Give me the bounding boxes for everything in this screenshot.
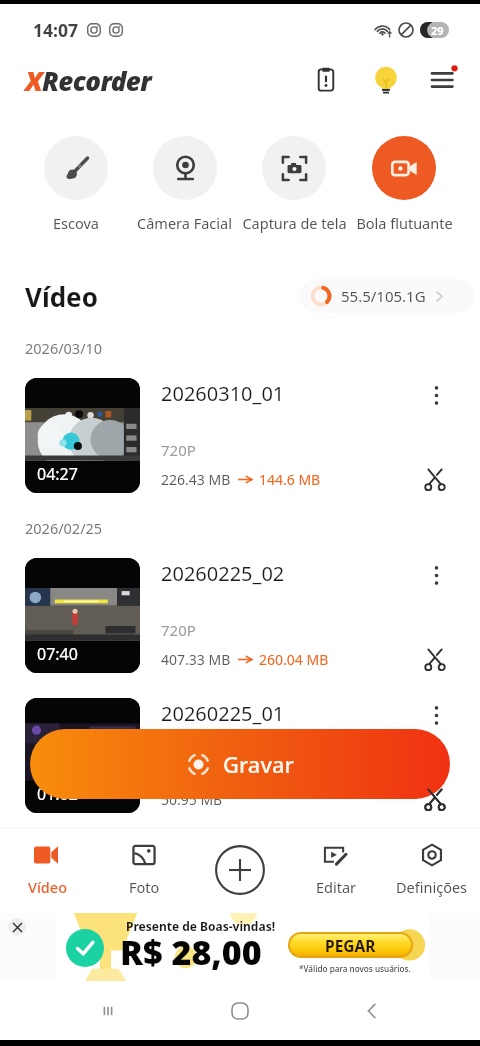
button[interactable]: Close ad	[8, 918, 26, 936]
button[interactable]: 07:40	[0, 558, 480, 673]
staticText: 20260225_02	[161, 560, 285, 587]
button[interactable]: Back	[348, 987, 396, 1035]
button[interactable]: Tips	[366, 60, 406, 100]
staticText: 2026/03/10	[25, 338, 103, 358]
staticText: Vídeo	[28, 877, 68, 897]
button[interactable]: Trim video	[413, 777, 457, 821]
button[interactable]: Vídeo	[0, 843, 96, 897]
button[interactable]: Definições	[384, 843, 480, 897]
staticText: R$ 28,00	[120, 929, 262, 975]
staticText: PEGAR	[325, 935, 376, 956]
staticText: 29	[431, 23, 444, 38]
staticText: 720P	[161, 620, 196, 640]
staticText: Definições	[396, 877, 468, 897]
staticText: Gravar	[223, 749, 294, 779]
button[interactable]: 55.5/105.1G	[299, 279, 474, 313]
button[interactable]: Câmera Facial	[130, 136, 239, 233]
button[interactable]: Menu	[424, 60, 464, 100]
button[interactable]: 04:27	[0, 378, 480, 493]
button[interactable]: Trim video	[413, 457, 457, 501]
staticText: Escova	[53, 213, 99, 233]
button[interactable]: 01:02	[0, 698, 480, 813]
button[interactable]: PEGAR	[288, 932, 413, 958]
staticText: *Válido para novos usuários.	[299, 963, 411, 974]
button[interactable]: More options	[414, 693, 458, 737]
button[interactable]: Gravar	[30, 729, 450, 799]
staticText: 20260310_01	[161, 380, 285, 407]
staticText: X	[25, 62, 42, 99]
staticText: 20260225_01	[161, 700, 285, 727]
staticText: Recorder	[42, 63, 152, 98]
staticText: 226.43 MB	[161, 470, 231, 489]
button[interactable]: Foto	[96, 843, 192, 897]
staticText: 04:27	[37, 463, 78, 485]
staticText: 07:40	[37, 643, 78, 665]
staticText: 720P	[161, 760, 196, 780]
staticText: 720P	[161, 440, 196, 460]
button[interactable]: Add	[192, 843, 288, 893]
button[interactable]: Captura de tela	[239, 136, 349, 233]
button[interactable]: Trim video	[413, 637, 457, 681]
staticText: Foto	[129, 877, 160, 897]
button[interactable]: Trim video	[413, 777, 457, 821]
staticText: Bola flutuante	[356, 213, 453, 233]
button[interactable]: Notices	[306, 60, 346, 100]
staticText: 144.6 MB	[259, 470, 321, 489]
staticText: 14:07	[33, 18, 78, 42]
staticText: 407.33 MB	[161, 650, 231, 669]
button[interactable]: Home	[216, 987, 264, 1035]
staticText: Captura de tela	[242, 213, 347, 233]
staticText: 50.95 MB	[161, 790, 223, 809]
button[interactable]: Bola flutuante	[349, 136, 459, 233]
staticText: Presente de Boas-vindas!	[126, 918, 276, 934]
staticText: Editar	[316, 877, 357, 897]
button[interactable]: Escova	[21, 136, 130, 233]
staticText: 01:02	[37, 783, 78, 805]
staticText: Câmera Facial	[137, 213, 232, 233]
staticText: 260.04 MB	[259, 650, 329, 669]
button[interactable]: More options	[414, 553, 458, 597]
staticText: 55.5/105.1G	[341, 286, 426, 306]
button[interactable]: Editar	[288, 843, 384, 897]
staticText: 2026/02/25	[25, 518, 103, 538]
button[interactable]: More options	[414, 373, 458, 417]
staticText: Vídeo	[25, 279, 98, 314]
button[interactable]: Recents	[84, 987, 132, 1035]
